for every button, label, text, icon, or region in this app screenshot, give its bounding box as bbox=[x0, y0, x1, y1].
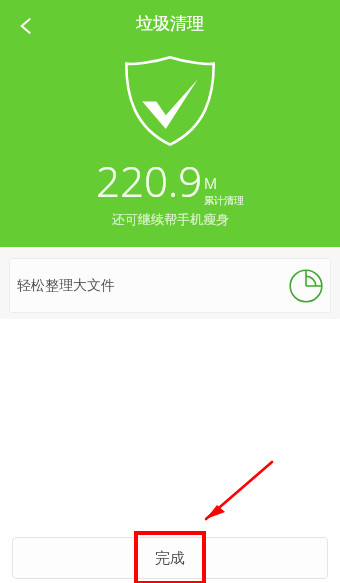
button[interactable]: 完成 bbox=[12, 537, 328, 579]
staticText: 累计清理 bbox=[204, 194, 244, 207]
button[interactable]: 轻松整理大文件 bbox=[9, 258, 331, 313]
staticText: 还可继续帮手机瘦身 bbox=[112, 211, 229, 227]
staticText: M bbox=[204, 173, 218, 193]
staticText: 220.9 bbox=[96, 152, 203, 209]
staticText: 轻松整理大文件 bbox=[17, 277, 289, 295]
staticText: 完成 bbox=[155, 549, 185, 568]
staticText: 垃圾清理 bbox=[136, 13, 204, 34]
button[interactable]: Back bbox=[6, 6, 46, 46]
